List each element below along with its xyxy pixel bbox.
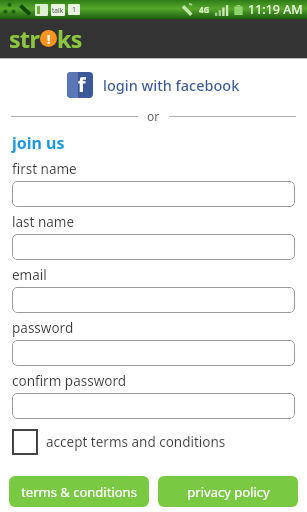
staticText: join us xyxy=(12,132,65,154)
staticText: password xyxy=(12,319,74,337)
staticText: privacy policy xyxy=(187,483,270,501)
staticText: 1 xyxy=(72,5,77,15)
button[interactable]: accept terms and conditions xyxy=(0,429,307,455)
staticText: last name xyxy=(12,213,75,231)
button[interactable] xyxy=(12,340,295,366)
button[interactable] xyxy=(12,287,295,313)
button[interactable] xyxy=(12,234,295,260)
staticText: 11:19 AM xyxy=(248,1,303,18)
staticText: first name xyxy=(12,160,77,178)
button[interactable] xyxy=(12,393,295,419)
button[interactable]: privacy policy xyxy=(158,476,298,507)
staticText: f xyxy=(78,72,86,97)
staticText: confirm password xyxy=(12,372,127,390)
staticText: email xyxy=(12,266,47,284)
staticText: ks xyxy=(57,23,82,54)
staticText: or xyxy=(147,108,160,124)
button[interactable]: f xyxy=(0,68,307,102)
staticText: talk xyxy=(52,6,64,15)
staticText: str xyxy=(9,23,40,54)
button[interactable] xyxy=(12,181,295,207)
staticText: terms & conditions xyxy=(21,483,137,501)
button[interactable]: terms & conditions xyxy=(9,476,149,507)
staticText: ! xyxy=(47,31,51,47)
staticText: accept terms and conditions xyxy=(46,433,226,451)
staticText: 4G xyxy=(199,4,210,15)
staticText: login with facebook xyxy=(103,75,240,95)
